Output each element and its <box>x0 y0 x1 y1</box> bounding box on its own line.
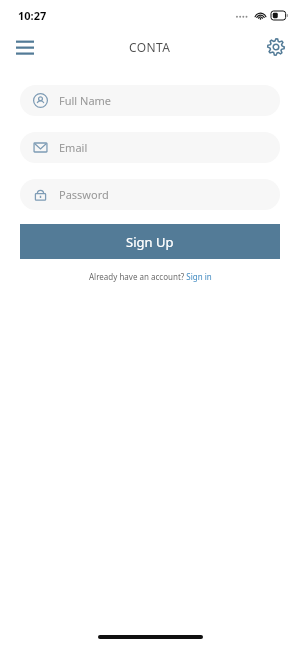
button[interactable]: Full Name <box>20 85 280 116</box>
button[interactable]: Sign Up <box>20 224 280 259</box>
button[interactable]: Settings <box>261 32 291 62</box>
staticText: Password <box>59 187 109 202</box>
button[interactable]: Already have an account? Sign in <box>0 271 300 282</box>
staticText: CONTA <box>129 39 171 55</box>
staticText: Email <box>59 140 88 155</box>
staticText: Sign Up <box>126 233 174 251</box>
button[interactable]: Menu <box>10 32 40 62</box>
staticText: Full Name <box>59 93 112 108</box>
button[interactable]: Email <box>20 132 280 163</box>
button[interactable]: Password <box>20 179 280 210</box>
staticText: Already have an account? Sign in <box>89 271 212 282</box>
staticText: 10:27 <box>18 8 47 23</box>
